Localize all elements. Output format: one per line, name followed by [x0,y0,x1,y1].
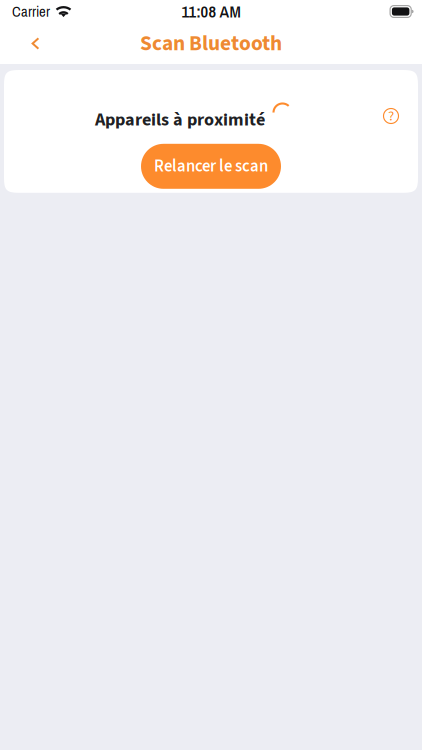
staticText: ? [388,106,394,126]
staticText: Appareils à proximité [95,107,265,133]
button[interactable]: Back [0,23,71,64]
staticText: Carrier [12,2,50,21]
button[interactable]: Help [374,99,408,133]
staticText: Relancer le scan [154,154,268,178]
staticText: Scan Bluetooth [140,28,282,59]
staticText: 11:08 AM [181,0,240,23]
button[interactable]: Relancer le scan [141,144,281,189]
